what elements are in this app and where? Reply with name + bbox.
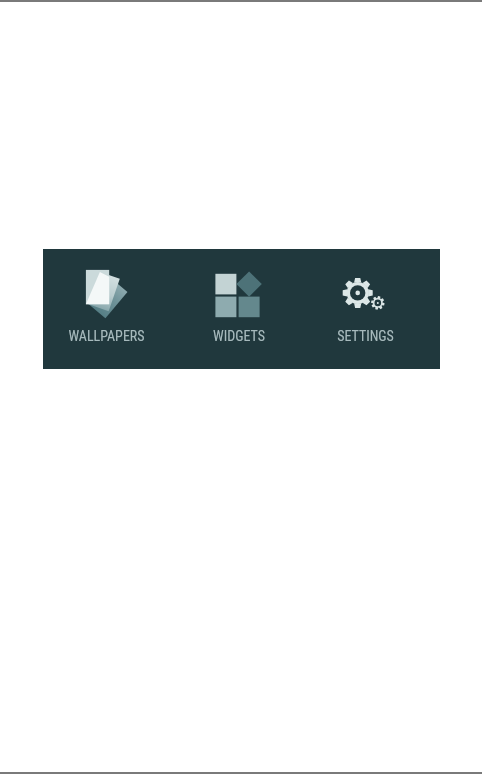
staticText: WIDGETS — [213, 328, 265, 344]
button[interactable]: Widgets — [184, 249, 294, 369]
button[interactable]: Wallpapers — [51, 249, 161, 369]
staticText: SETTINGS — [337, 328, 394, 344]
staticText: WALLPAPERS — [68, 328, 145, 344]
button[interactable]: Settings — [310, 249, 420, 369]
